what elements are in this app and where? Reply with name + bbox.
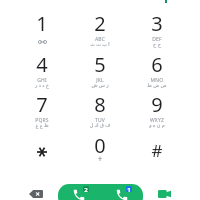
button[interactable]: Call with SIM 1 xyxy=(100,184,143,200)
staticText: م ن ه و xyxy=(129,122,185,129)
staticText: 2 xyxy=(72,10,128,37)
button[interactable]: 5 xyxy=(72,51,128,91)
button[interactable] xyxy=(14,132,70,172)
button[interactable]: 7 xyxy=(14,91,70,131)
staticText: 7 xyxy=(14,91,70,118)
button[interactable]: 2 xyxy=(72,10,128,50)
button[interactable]: 1 xyxy=(14,10,70,50)
button[interactable]: # xyxy=(129,132,185,172)
button[interactable]: Backspace xyxy=(25,184,47,200)
staticText: خ د ذ ر xyxy=(14,82,70,89)
staticText: ABC xyxy=(72,36,128,43)
staticText: ظ ع غ xyxy=(14,122,70,129)
staticText: MNO xyxy=(129,77,185,84)
staticText: + xyxy=(72,153,128,164)
staticText: 0 xyxy=(72,132,128,159)
staticText: 4 xyxy=(14,51,70,78)
staticText: TUV xyxy=(72,117,128,124)
button[interactable]: 3 xyxy=(129,10,185,50)
staticText: 3 xyxy=(129,10,185,37)
button[interactable]: 6 xyxy=(129,51,185,91)
button[interactable]: 0 xyxy=(72,132,128,172)
staticText: WXYZ xyxy=(129,117,185,124)
staticText: DEF xyxy=(129,36,185,43)
staticText: 8 xyxy=(72,91,128,118)
staticText: JKL xyxy=(72,77,128,84)
staticText: ا ب ت ث xyxy=(72,41,128,48)
staticText: 1 xyxy=(127,186,131,192)
staticText: 5 xyxy=(72,51,128,78)
staticText: 9 xyxy=(129,91,185,118)
staticText: ز س ش xyxy=(72,82,128,89)
staticText: GHI xyxy=(14,77,70,84)
staticText: 1 xyxy=(14,10,70,37)
staticText: ف ق ك ل xyxy=(72,122,128,129)
button[interactable]: 4 xyxy=(14,51,70,91)
staticText: ج ح xyxy=(129,41,185,48)
staticText: 6 xyxy=(129,51,185,78)
button[interactable]: Video call xyxy=(153,184,175,200)
button[interactable]: Call with SIM 2 xyxy=(58,184,100,200)
staticText: ص ض ط xyxy=(129,82,185,89)
staticText: PQRS xyxy=(14,117,70,124)
button[interactable]: 8 xyxy=(72,91,128,131)
staticText: 2 xyxy=(84,186,88,192)
button[interactable]: 9 xyxy=(129,91,185,131)
staticText: # xyxy=(129,139,185,162)
